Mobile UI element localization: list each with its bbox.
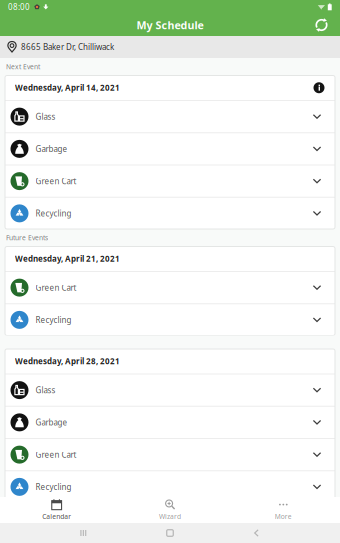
staticText: Wizard <box>159 512 181 521</box>
button[interactable]: Glass <box>5 374 335 406</box>
staticText: Garbage <box>35 144 67 154</box>
staticText: Glass <box>35 111 55 122</box>
staticText: Recycling <box>35 208 71 219</box>
staticText: Green Cart <box>35 282 76 293</box>
button[interactable]: Wizard <box>113 497 227 523</box>
staticText: Recycling <box>35 482 71 492</box>
button[interactable]: Recycling <box>5 471 335 502</box>
button[interactable]: Back <box>254 529 260 537</box>
staticText: Wednesday, April 28, 2021 <box>15 356 120 366</box>
staticText: Glass <box>35 385 55 395</box>
staticText: Next Event <box>6 62 40 71</box>
button[interactable]: Refresh schedule <box>314 17 329 32</box>
button[interactable]: Green Cart <box>5 272 335 303</box>
button[interactable]: Recent apps <box>80 530 86 536</box>
button[interactable]: Garbage <box>5 407 335 438</box>
button[interactable]: 8665 Baker Dr, Chilliwack <box>0 36 340 58</box>
button[interactable]: Recycling <box>5 198 335 229</box>
button[interactable]: Green Cart <box>5 165 335 197</box>
staticText: 08:00 <box>8 2 30 12</box>
button[interactable]: More <box>227 497 340 523</box>
staticText: Green Cart <box>35 449 76 460</box>
button[interactable]: Glass <box>5 101 335 132</box>
staticText: Wednesday, April 21, 2021 <box>15 253 120 264</box>
button[interactable]: Calendar <box>0 497 113 523</box>
staticText: Future Events <box>6 233 48 242</box>
button[interactable]: Garbage <box>5 133 335 164</box>
button[interactable]: Event information <box>313 82 325 94</box>
staticText: Wednesday, April 14, 2021 <box>15 82 120 93</box>
staticText: Garbage <box>35 417 67 428</box>
staticText: More <box>275 512 292 521</box>
button[interactable]: Recycling <box>5 304 335 335</box>
staticText: Green Cart <box>35 176 76 186</box>
button[interactable]: Green Cart <box>5 439 335 470</box>
staticText: 8665 Baker Dr, Chilliwack <box>21 42 114 52</box>
staticText: My Schedule <box>136 18 203 32</box>
staticText: Recycling <box>35 315 71 325</box>
staticText: Calendar <box>42 512 71 521</box>
button[interactable]: Home <box>167 530 173 536</box>
